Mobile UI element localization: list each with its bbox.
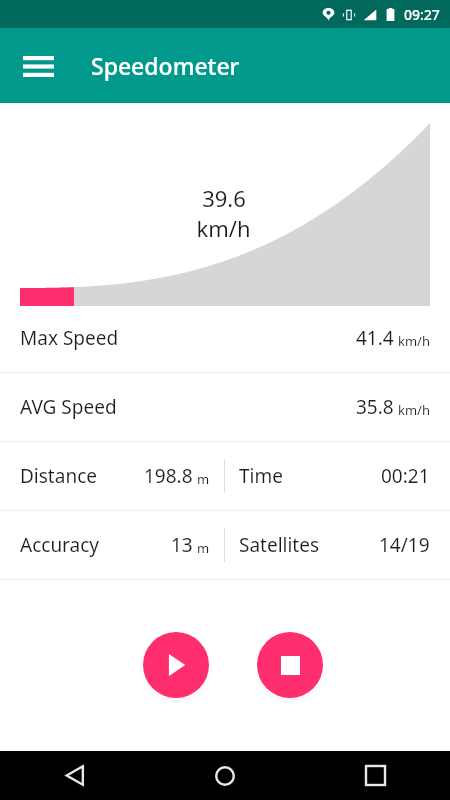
- button[interactable]: Satellites: [225, 511, 450, 579]
- button[interactable]: Home: [150, 751, 300, 800]
- staticText: 35.8: [356, 394, 394, 420]
- button[interactable]: Max Speed: [0, 304, 450, 372]
- staticText: m: [197, 539, 210, 557]
- staticText: 39.6: [202, 183, 246, 213]
- button[interactable]: Stop: [257, 632, 323, 698]
- staticText: 13: [171, 532, 193, 558]
- staticText: m: [197, 470, 210, 488]
- button[interactable]: Distance: [0, 442, 224, 510]
- staticText: km/h: [398, 332, 430, 350]
- staticText: Accuracy: [20, 532, 100, 558]
- staticText: 09:27: [404, 5, 440, 24]
- staticText: Satellites: [239, 532, 320, 558]
- staticText: 198.8: [144, 463, 193, 489]
- staticText: 00:21: [381, 463, 430, 489]
- staticText: AVG Speed: [20, 394, 117, 420]
- staticText: km/h: [196, 213, 251, 243]
- button[interactable]: Start: [143, 632, 209, 698]
- staticText: km/h: [398, 401, 430, 419]
- staticText: 14/19: [379, 532, 430, 558]
- staticText: Distance: [20, 463, 97, 489]
- staticText: Max Speed: [20, 325, 119, 351]
- staticText: 41.4: [356, 325, 394, 351]
- button[interactable]: Accuracy: [0, 511, 224, 579]
- staticText: Speedometer: [91, 50, 240, 81]
- staticText: Time: [239, 463, 283, 489]
- button[interactable]: AVG Speed: [0, 373, 450, 441]
- button[interactable]: Time: [225, 442, 450, 510]
- button[interactable]: Recent apps: [300, 751, 450, 800]
- button[interactable]: Open navigation menu: [14, 42, 62, 90]
- button[interactable]: Back: [0, 751, 150, 800]
